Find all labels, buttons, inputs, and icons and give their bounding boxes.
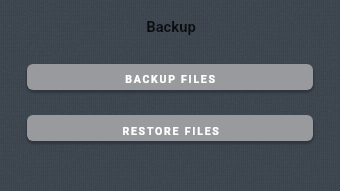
button[interactable]: BACKUP FILES [27,64,313,90]
button[interactable]: RESTORE FILES [27,115,313,141]
staticText: RESTORE FILES [122,125,221,137]
staticText: Backup [1,18,340,191]
staticText: BACKUP FILES [125,73,217,85]
